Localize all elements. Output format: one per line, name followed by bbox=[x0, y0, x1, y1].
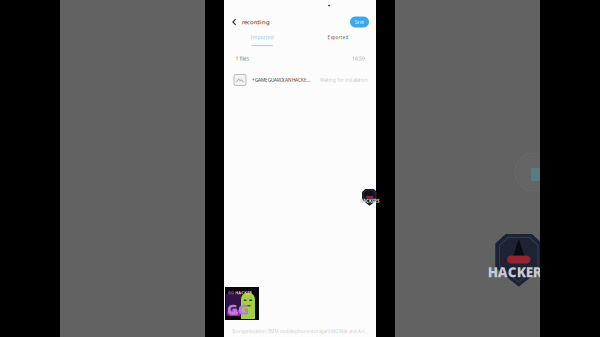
staticText: recording bbox=[242, 18, 270, 26]
staticText: Waiting for installation bbox=[320, 77, 368, 83]
staticText: HACKERS bbox=[360, 198, 379, 204]
staticText: GG bbox=[227, 299, 249, 319]
staticText: Imported bbox=[250, 34, 273, 41]
button[interactable]: +GAMEGUARDIANHACKER... bbox=[224, 69, 376, 91]
button[interactable]: recording bbox=[232, 14, 270, 30]
button[interactable]: Imported bbox=[224, 34, 300, 46]
staticText: +GAMEGUARDIANHACKER... bbox=[252, 77, 312, 83]
staticText: Save bbox=[354, 19, 364, 25]
button[interactable]: Save bbox=[350, 16, 369, 27]
staticText: HACKER bbox=[235, 290, 252, 295]
staticText: GG bbox=[228, 290, 234, 295]
staticText: Storage location: EMTA mobile phone stor… bbox=[232, 328, 368, 334]
staticText: 1 files bbox=[235, 55, 248, 62]
staticText: 16:59 bbox=[352, 55, 365, 62]
button[interactable]: Exported bbox=[300, 34, 376, 46]
staticText: HACKERS bbox=[488, 263, 550, 281]
staticText: Exported bbox=[327, 34, 348, 41]
